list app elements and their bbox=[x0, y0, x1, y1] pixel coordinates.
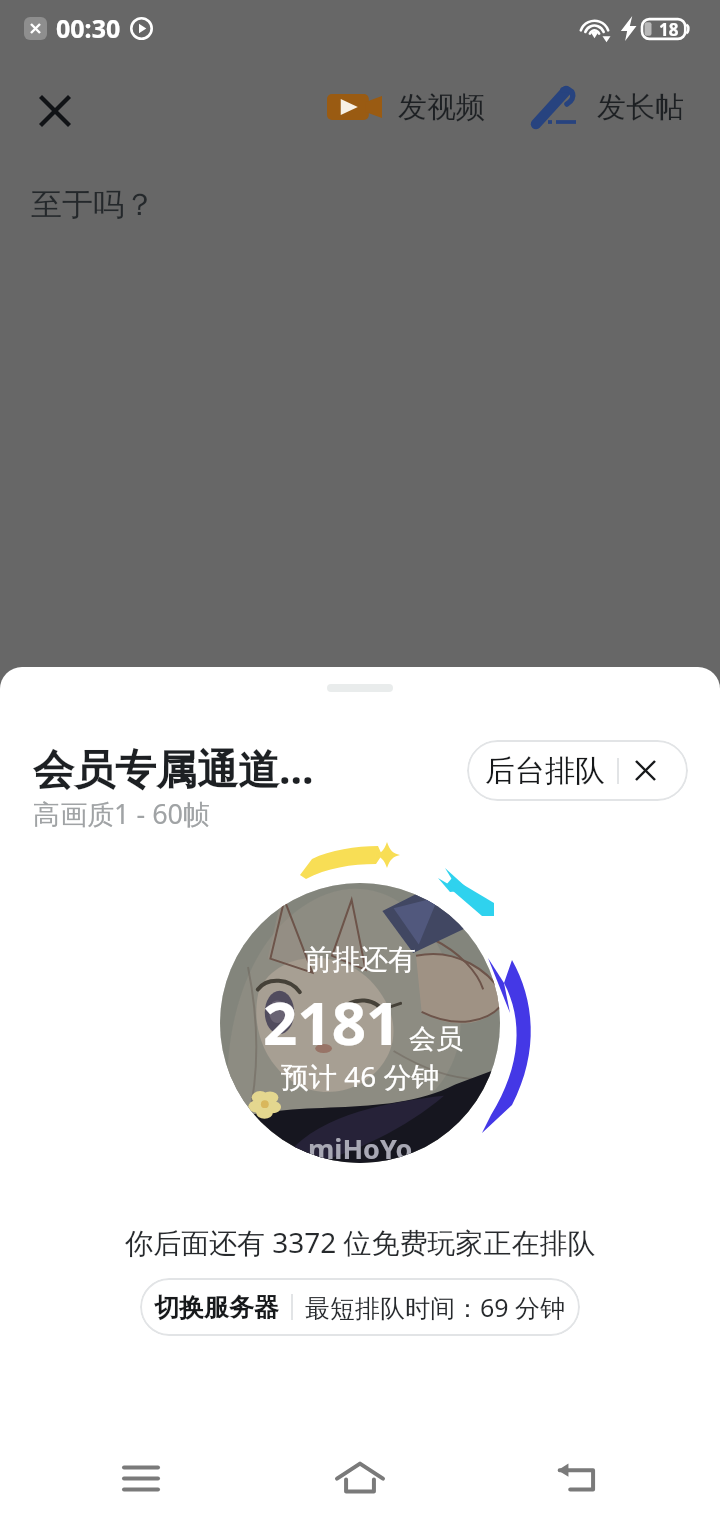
staticText: 预计 46 分钟 bbox=[281, 1057, 440, 1095]
button[interactable]: Close bbox=[27, 83, 83, 139]
button[interactable]: Home bbox=[319, 1437, 401, 1519]
button[interactable]: 切换服务器 bbox=[140, 1278, 580, 1336]
staticText: miHoYo bbox=[308, 1130, 413, 1163]
staticText: 18 bbox=[659, 18, 679, 41]
staticText: 至于吗？ bbox=[31, 185, 155, 224]
staticText: 会员专属通道... bbox=[33, 740, 314, 796]
button[interactable]: Recents bbox=[100, 1437, 182, 1519]
staticText: 最短排队时间：69 分钟 bbox=[305, 1290, 566, 1324]
staticText: 前排还有 bbox=[304, 942, 416, 977]
button[interactable]: Back bbox=[538, 1437, 620, 1519]
staticText: 发长帖 bbox=[597, 89, 684, 126]
button[interactable]: Close queue panel bbox=[619, 740, 671, 801]
button[interactable]: 后台排队 bbox=[485, 740, 605, 801]
button[interactable]: 发长帖 bbox=[533, 82, 684, 132]
staticText: 2181 bbox=[263, 981, 401, 1063]
staticText: 00:30 bbox=[56, 11, 121, 45]
staticText: 高画质1 - 60帧 bbox=[33, 795, 211, 832]
staticText: 你后面还有 3372 位免费玩家正在排队 bbox=[125, 1223, 596, 1261]
staticText: 会员 bbox=[409, 1022, 463, 1056]
staticText: 后台排队 bbox=[485, 752, 605, 790]
staticText: 切换服务器 bbox=[154, 1292, 279, 1323]
button[interactable]: 发视频 bbox=[327, 82, 485, 132]
staticText: 发视频 bbox=[398, 89, 485, 126]
